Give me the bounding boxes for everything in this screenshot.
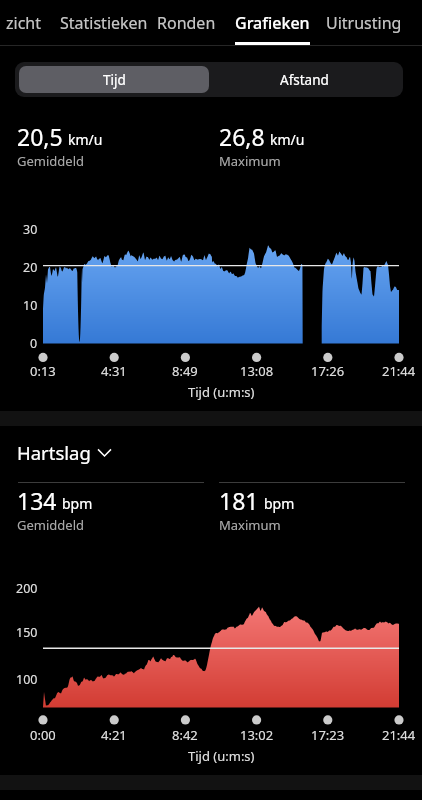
staticText: Ronden — [157, 12, 216, 34]
staticText: 0 — [30, 335, 38, 352]
button[interactable]: Tijd — [19, 66, 209, 93]
staticText: 10 — [23, 297, 38, 314]
staticText: Gemiddeld — [17, 152, 84, 170]
staticText: Tijd (u:m:s) — [188, 747, 255, 765]
button[interactable]: Uitrusting — [319, 4, 409, 41]
staticText: 30 — [23, 221, 38, 238]
staticText: 13:08 — [240, 362, 274, 380]
staticText: 134 — [17, 485, 57, 516]
staticText: 8:42 — [172, 726, 198, 744]
button[interactable]: Statistieken — [51, 4, 157, 41]
staticText: Tijd (u:m:s) — [188, 383, 255, 401]
staticText: 200 — [16, 580, 38, 597]
staticText: 17:23 — [311, 726, 345, 744]
staticText: 21:44 — [382, 726, 416, 744]
staticText: 100 — [16, 671, 38, 688]
staticText: km/u — [270, 130, 305, 149]
staticText: Uitrusting — [326, 12, 402, 34]
staticText: 8:49 — [172, 362, 198, 380]
staticText: 13:02 — [240, 726, 274, 744]
staticText: 20 — [23, 259, 38, 276]
staticText: Statistieken — [60, 12, 148, 34]
staticText: Tijd — [103, 71, 126, 89]
staticText: 26,8 — [219, 121, 265, 152]
staticText: bpm — [62, 494, 93, 513]
staticText: 4:21 — [101, 726, 127, 744]
button[interactable]: Hartslag — [17, 440, 111, 465]
staticText: Maximum — [219, 152, 281, 170]
staticText: bpm — [264, 494, 295, 513]
button[interactable]: Grafieken — [227, 4, 318, 41]
button[interactable]: Ronden — [154, 4, 219, 41]
button[interactable]: zicht — [0, 4, 50, 41]
staticText: 21:44 — [382, 362, 416, 380]
staticText: Gemiddeld — [17, 516, 84, 534]
staticText: 150 — [16, 624, 38, 641]
staticText: zicht — [6, 12, 41, 34]
staticText: Grafieken — [235, 12, 310, 34]
staticText: 4:31 — [101, 362, 127, 380]
staticText: 181 — [219, 485, 259, 516]
staticText: 0:13 — [30, 362, 56, 380]
staticText: 20,5 — [17, 121, 63, 152]
staticText: Hartslag — [17, 440, 91, 465]
staticText: Maximum — [219, 516, 281, 534]
staticText: 0:00 — [30, 726, 56, 744]
staticText: Afstand — [280, 71, 329, 89]
staticText: km/u — [68, 130, 103, 149]
button[interactable]: Afstand — [209, 66, 399, 93]
staticText: 17:26 — [311, 362, 345, 380]
